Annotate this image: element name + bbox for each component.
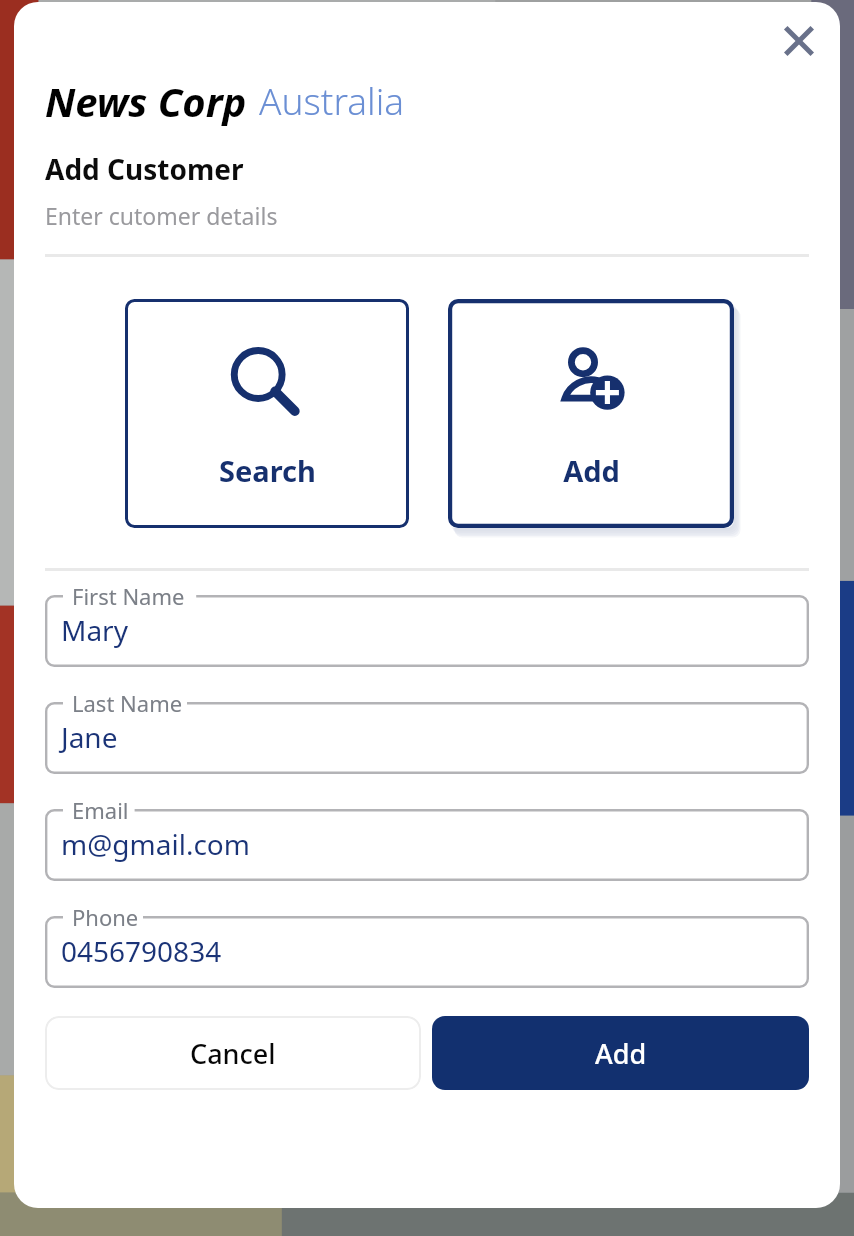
staticText: News Corp	[45, 74, 247, 128]
button[interactable]: First Name	[45, 595, 809, 667]
staticText: Search	[219, 451, 316, 490]
button[interactable]: Add	[448, 299, 734, 528]
staticText: Add	[563, 451, 620, 490]
button[interactable]: Cancel	[45, 1016, 421, 1090]
button[interactable]: Email	[45, 809, 809, 881]
button[interactable]: Close	[768, 10, 830, 72]
button[interactable]: Search	[125, 299, 409, 528]
staticText: Australia	[259, 75, 405, 125]
staticText: Mary	[61, 611, 128, 649]
staticText: Cancel	[190, 1035, 276, 1072]
button[interactable]: Add	[432, 1016, 809, 1090]
staticText: Add Customer	[45, 150, 244, 188]
staticText: m@gmail.com	[61, 825, 250, 863]
staticText: Enter cutomer details	[45, 200, 278, 231]
staticText: Email	[72, 795, 129, 825]
staticText: 0456790834	[61, 932, 222, 970]
button[interactable]: Last Name	[45, 702, 809, 774]
staticText: Add	[595, 1035, 647, 1072]
staticText: Phone	[72, 902, 139, 932]
staticText: First Name	[72, 581, 185, 611]
staticText: Last Name	[72, 688, 183, 718]
button[interactable]: Phone	[45, 916, 809, 988]
staticText: Jane	[61, 718, 118, 756]
